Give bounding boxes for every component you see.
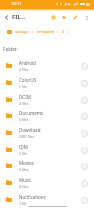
button[interactable]: Notifications: [0, 191, 94, 208]
button[interactable]: Android: [0, 57, 94, 74]
button[interactable]: Storage: [7, 30, 12, 34]
staticText: 2007 files: [19, 134, 35, 139]
staticText: ›: [68, 29, 70, 34]
staticText: IDM: [19, 144, 28, 150]
button[interactable]: Download: [0, 124, 94, 141]
button[interactable]: Select: [80, 162, 88, 170]
staticText: DCIM: [19, 94, 31, 100]
button[interactable]: Share: [59, 12, 70, 23]
staticText: Android: [19, 60, 36, 66]
staticText: ColorOS: [19, 77, 37, 83]
staticText: 4 files: [19, 184, 29, 189]
staticText: 5 files: [19, 167, 29, 172]
staticText: 3 files: [19, 101, 29, 106]
button[interactable]: Recent: [48, 12, 59, 23]
button[interactable]: Select: [80, 129, 88, 137]
button[interactable]: Select: [80, 62, 88, 70]
button[interactable]: Music: [0, 174, 94, 191]
button[interactable]: Edit: [70, 12, 81, 23]
staticText: Download: [19, 127, 41, 133]
button[interactable]: ColorOS: [0, 74, 94, 91]
staticText: storage: [15, 29, 29, 34]
staticText: 6 files: [19, 117, 29, 122]
staticText: Documents: [19, 110, 44, 116]
staticText: FIL...: [12, 13, 26, 21]
staticText: emulated: [37, 29, 54, 34]
staticText: 1 file: [19, 201, 27, 206]
staticText: 1 file: [19, 151, 27, 156]
staticText: Notifications: [19, 194, 46, 200]
button[interactable]: DCIM: [0, 91, 94, 108]
button[interactable]: Select: [80, 196, 88, 204]
staticText: Music: [19, 177, 32, 183]
button[interactable]: Movies: [0, 157, 94, 174]
button[interactable]: Select: [80, 179, 88, 187]
staticText: Movies: [19, 160, 34, 166]
button[interactable]: Select: [80, 79, 88, 87]
staticText: Folder:: [3, 46, 18, 52]
button[interactable]: IDM: [0, 141, 94, 158]
staticText: 10:11: [11, 1, 22, 7]
staticText: ›: [32, 29, 34, 34]
staticText: 83: [86, 2, 91, 7]
button[interactable]: More options: [81, 12, 92, 23]
button[interactable]: Select: [80, 112, 88, 120]
button[interactable]: Select: [80, 146, 88, 154]
staticText: ›: [57, 29, 59, 34]
button[interactable]: Documents: [0, 107, 94, 124]
staticText: 1 file: [19, 84, 27, 89]
staticText: 4 files: [19, 67, 29, 72]
button[interactable]: Back: [0, 11, 12, 23]
button[interactable]: Select: [80, 96, 88, 104]
staticText: 0: [62, 29, 65, 34]
